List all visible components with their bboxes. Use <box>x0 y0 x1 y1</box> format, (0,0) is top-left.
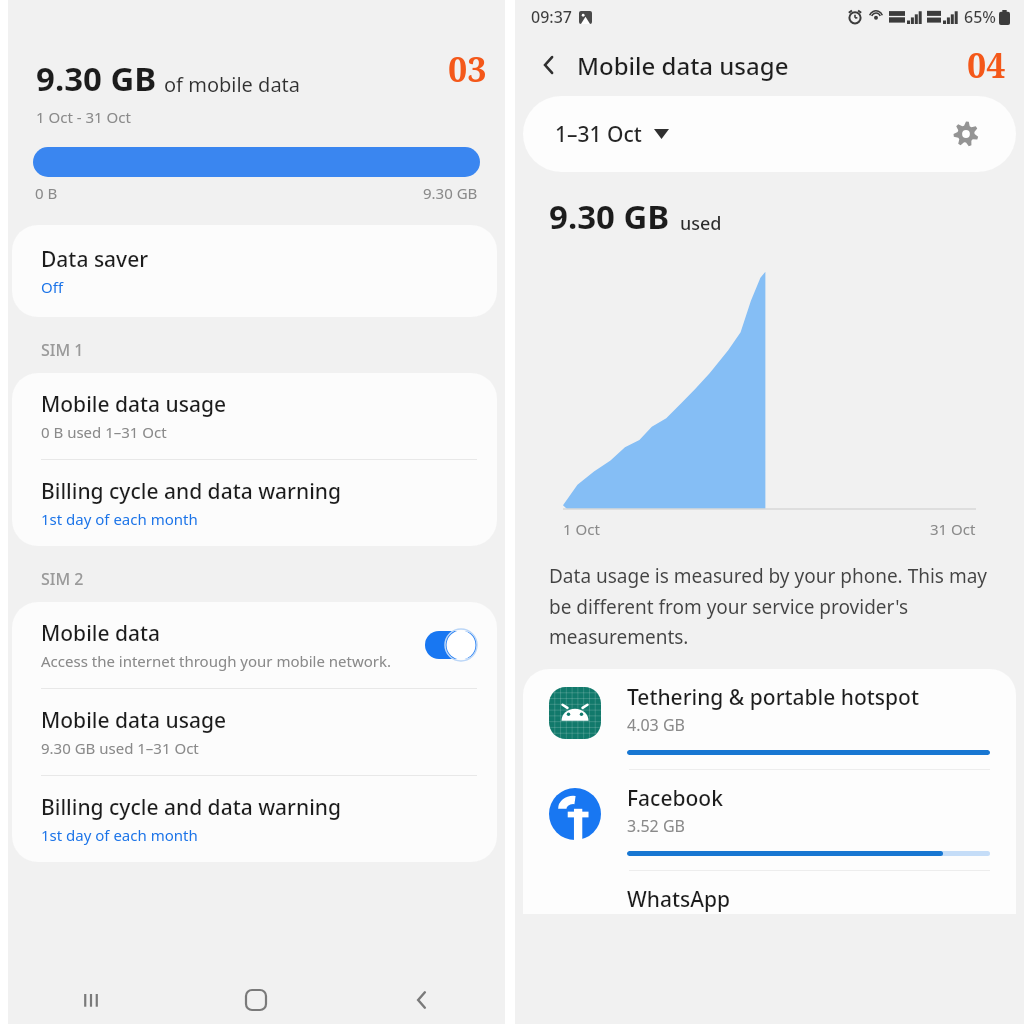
staticText: WhatsApp <box>627 885 730 914</box>
staticText: 04 <box>967 42 1006 88</box>
staticText: SIM 2 <box>41 568 84 590</box>
staticText: used <box>680 211 722 236</box>
staticText: 9.30 GB <box>549 194 670 239</box>
staticText: 31 Oct <box>930 519 976 539</box>
staticText: Tethering & portable hotspot <box>627 683 919 712</box>
button[interactable]: Home <box>173 976 339 1024</box>
staticText: SIM 1 <box>41 339 84 361</box>
staticText: Data saver <box>41 245 149 274</box>
staticText: 9.30 GB <box>36 56 157 101</box>
staticText: Mobile data usage <box>41 390 226 419</box>
button[interactable]: Mobile data <box>12 602 497 688</box>
staticText: 1 Oct - 31 Oct <box>36 107 131 127</box>
button[interactable]: Back <box>529 45 569 85</box>
button[interactable]: Recents <box>8 976 173 1024</box>
staticText: 0 B <box>35 183 58 203</box>
staticText: Mobile data usage <box>41 706 226 735</box>
staticText: 1st day of each month <box>41 825 198 845</box>
button[interactable]: Back <box>339 976 505 1024</box>
button[interactable]: Facebook <box>523 770 1016 870</box>
staticText: Mobile data usage <box>577 49 789 82</box>
button[interactable]: WhatsApp <box>523 871 1016 914</box>
button[interactable]: Settings <box>946 114 986 154</box>
staticText: Off <box>41 277 64 297</box>
staticText: 9.30 GB <box>423 183 478 203</box>
staticText: 03 <box>448 46 487 92</box>
staticText: 9.30 GB used 1–31 Oct <box>41 738 199 758</box>
staticText: 3.52 GB <box>627 815 685 837</box>
button[interactable]: Tethering & portable hotspot <box>523 669 1016 769</box>
staticText: Facebook <box>627 784 723 813</box>
button[interactable]: Mobile data toggle <box>425 629 477 661</box>
button[interactable]: 1–31 Oct <box>523 96 1016 172</box>
button[interactable]: 03 <box>448 46 487 92</box>
staticText: Billing cycle and data warning <box>41 477 342 506</box>
button[interactable]: Data saver <box>12 225 497 317</box>
button[interactable]: Billing cycle and data warning <box>12 776 497 862</box>
staticText: Billing cycle and data warning <box>41 793 342 822</box>
staticText: 65% <box>964 6 996 28</box>
staticText: 09:37 <box>531 6 572 28</box>
staticText: Data usage is measured by your phone. Th… <box>549 563 998 649</box>
staticText: 1–31 Oct <box>555 120 642 149</box>
button[interactable]: Mobile data usage <box>12 373 497 459</box>
button[interactable]: Mobile data usage <box>12 689 497 775</box>
staticText: Access the internet through your mobile … <box>41 651 392 671</box>
staticText: of mobile data <box>164 71 301 98</box>
staticText: 1 Oct <box>563 519 600 539</box>
staticText: Mobile data <box>41 619 161 648</box>
button[interactable]: Billing cycle and data warning <box>12 460 497 546</box>
staticText: 4.03 GB <box>627 714 685 736</box>
staticText: 1st day of each month <box>41 509 198 529</box>
button[interactable]: 04 <box>967 42 1006 88</box>
staticText: 0 B used 1–31 Oct <box>41 422 167 442</box>
